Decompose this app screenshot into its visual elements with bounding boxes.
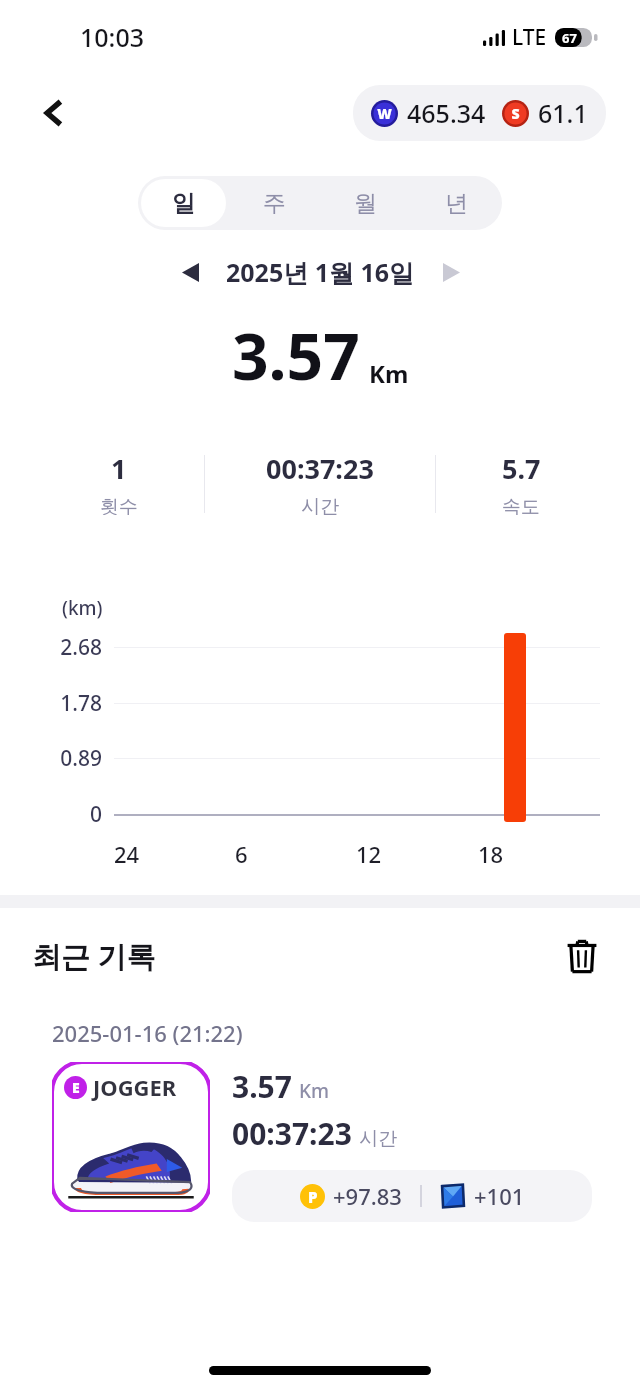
staticText: LTE xyxy=(512,23,547,52)
button[interactable]: 주 xyxy=(232,179,317,227)
staticText: 24 xyxy=(114,839,140,869)
button[interactable]: 2025-01-16 (21:22) xyxy=(28,1000,612,1242)
staticText: +97.83 xyxy=(333,1181,402,1211)
staticText: 0 xyxy=(20,800,102,829)
staticText: 1.78 xyxy=(20,689,102,718)
staticText: 2025년 1월 16일 xyxy=(226,255,415,289)
button[interactable]: 년 xyxy=(414,179,499,227)
staticText: 5.7 xyxy=(502,450,541,487)
staticText: 횟수 xyxy=(100,495,138,519)
staticText: Km xyxy=(299,1078,330,1104)
staticText: 2.68 xyxy=(20,633,102,662)
staticText: 일 xyxy=(172,189,195,218)
staticText: 1 xyxy=(111,450,127,487)
button[interactable]: 일 xyxy=(141,179,226,227)
staticText: 00:37:23 xyxy=(266,450,374,487)
staticText: 18 xyxy=(478,839,504,869)
staticText: S xyxy=(511,104,520,123)
button[interactable]: Back xyxy=(28,86,82,140)
staticText: JOGGER xyxy=(93,1072,177,1102)
staticText: W xyxy=(377,104,392,123)
button[interactable]: P xyxy=(232,1170,592,1222)
staticText: +101 xyxy=(474,1181,525,1211)
staticText: 67 xyxy=(562,29,577,47)
button[interactable]: W xyxy=(353,85,606,141)
staticText: 10:03 xyxy=(80,20,145,54)
staticText: 00:37:23 xyxy=(232,1113,352,1154)
staticText: P xyxy=(308,1187,318,1207)
staticText: 시간 xyxy=(359,1127,397,1151)
staticText: 6 xyxy=(235,839,248,869)
staticText: 주 xyxy=(263,189,286,218)
staticText: 시간 xyxy=(301,495,339,519)
staticText: 최근 기록 xyxy=(32,936,156,976)
staticText: 2025-01-16 (21:22) xyxy=(52,1018,243,1048)
staticText: 3.57 xyxy=(232,312,360,399)
button[interactable]: 월 xyxy=(323,179,408,227)
staticText: 61.1 xyxy=(538,96,588,130)
staticText: (km) xyxy=(62,595,103,621)
button[interactable]: Next day xyxy=(429,250,473,294)
button[interactable]: Delete records xyxy=(556,930,608,982)
staticText: 속도 xyxy=(502,495,540,519)
staticText: 465.34 xyxy=(407,96,486,130)
button[interactable]: 1 xyxy=(34,450,204,519)
staticText: 월 xyxy=(354,189,377,218)
button[interactable]: 5.7 xyxy=(436,450,606,519)
staticText: 3.57 xyxy=(232,1066,292,1107)
staticText: 년 xyxy=(445,189,468,218)
button[interactable]: Previous day xyxy=(168,250,212,294)
staticText: E xyxy=(72,1078,80,1097)
staticText: Km xyxy=(369,357,409,390)
staticText: 12 xyxy=(356,839,382,869)
staticText: 0.89 xyxy=(20,744,102,773)
button[interactable]: 00:37:23 xyxy=(205,450,435,519)
